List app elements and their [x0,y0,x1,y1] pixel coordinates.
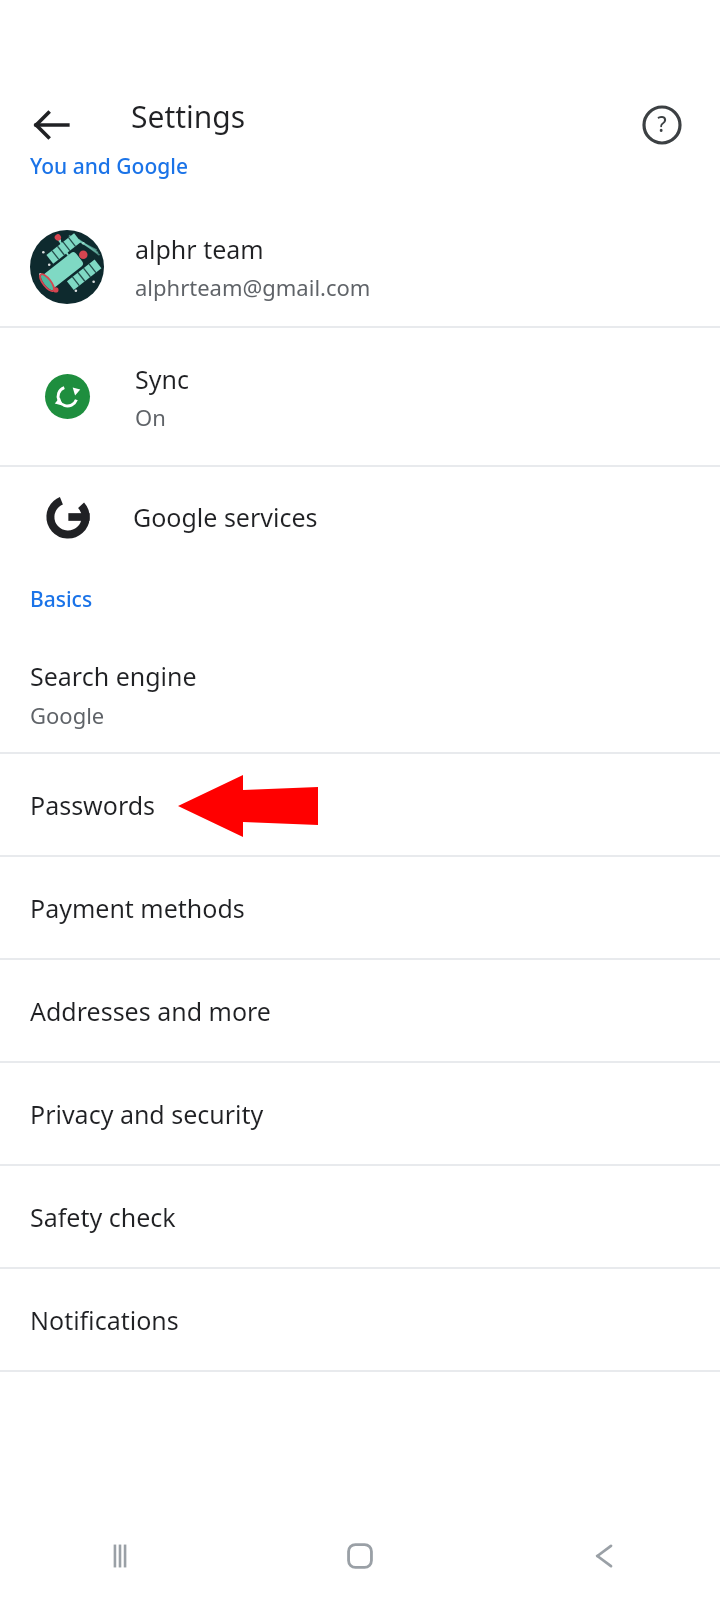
button[interactable]: Sync [0,328,720,465]
button[interactable]: Back [22,95,82,155]
staticText: Sync [135,362,189,396]
button[interactable]: Privacy and security [0,1063,720,1164]
button[interactable]: Recent apps [0,1512,240,1600]
button[interactable]: Search engine [0,637,720,752]
button[interactable]: Payment methods [0,857,720,958]
staticText: You and Google [30,152,189,181]
staticText: Search engine [30,659,197,693]
staticText: alphr team [135,232,264,266]
staticText: Privacy and security [30,1097,264,1131]
staticText: Payment methods [30,891,245,925]
staticText: Addresses and more [30,994,271,1028]
button[interactable]: Help [632,95,692,155]
button[interactable]: Back [480,1512,720,1600]
staticText: alphrteam@gmail.com [135,272,371,302]
button[interactable]: Notifications [0,1269,720,1370]
staticText: Safety check [30,1200,176,1234]
button[interactable]: Addresses and more [0,960,720,1061]
staticText: Passwords [30,788,156,822]
staticText: ? [657,110,667,139]
staticText: Notifications [30,1303,179,1337]
button[interactable]: Passwords [0,754,720,855]
button[interactable]: Google services [0,467,720,567]
staticText: Google services [133,500,318,534]
staticText: On [135,402,166,432]
button[interactable]: Safety check [0,1166,720,1267]
staticText: Google [30,700,105,730]
staticText: Basics [30,585,93,614]
button[interactable]: alphr team [0,208,720,326]
button[interactable]: Home [240,1512,480,1600]
staticText: Settings [131,96,246,137]
